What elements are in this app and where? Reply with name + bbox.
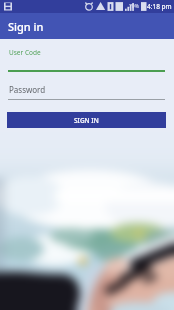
staticText: 79% [129,3,139,10]
staticText: Password [9,84,46,95]
staticText: SIGN IN [74,116,99,125]
button[interactable]: Password [0,72,174,100]
staticText: User Code [9,48,41,57]
staticText: 4:18 pm [147,2,172,11]
button[interactable]: SIGN IN [7,112,166,128]
button[interactable]: User Code [0,39,174,72]
staticText: Sign in [8,19,44,34]
